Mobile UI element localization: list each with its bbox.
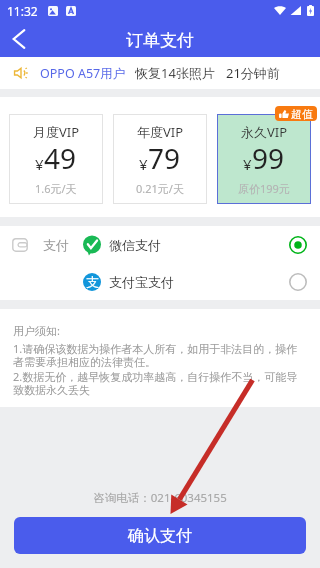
staticText: 订单支付	[126, 30, 194, 51]
staticText: ¥	[35, 154, 44, 174]
staticText: 79	[148, 139, 181, 177]
staticText: 11:32	[7, 3, 38, 19]
staticText: 21分钟前	[226, 64, 280, 82]
button[interactable]: 月度VIP	[9, 114, 103, 204]
staticText: 年度VIP	[137, 123, 184, 141]
staticText: 永久VIP	[241, 123, 288, 141]
staticText: 恢复14张照片	[135, 64, 215, 82]
staticText: 99	[252, 139, 285, 177]
staticText: 微信支付	[109, 237, 161, 253]
staticText: 1.6元/天	[35, 181, 77, 196]
staticText: 咨询电话：021-60345155	[0, 490, 320, 506]
staticText: ¥	[139, 154, 148, 174]
button[interactable]: 支付	[12, 226, 307, 263]
button[interactable]: 年度VIP	[113, 114, 207, 204]
staticText: 49	[44, 139, 77, 177]
staticText: 支付宝支付	[109, 274, 174, 290]
button[interactable]: Back	[5, 25, 33, 53]
staticText: 确认支付	[128, 526, 192, 546]
button[interactable]: 支	[12, 263, 307, 300]
button[interactable]: 永久VIP	[217, 114, 311, 204]
staticText: 超值	[291, 107, 313, 121]
staticText: 支	[86, 274, 99, 290]
staticText: 2.数据无价，越早恢复成功率越高，自行操作不当，可能导致数据永久丢失	[13, 369, 300, 397]
staticText: 用户须知:	[13, 323, 60, 338]
button[interactable]: 确认支付	[14, 517, 306, 554]
staticText: 1.请确保该数据为操作者本人所有，如用于非法目的，操作者需要承担相应的法律责任。	[13, 341, 300, 369]
staticText: OPPO A57用户	[40, 65, 126, 82]
staticText: 0.21元/天	[136, 181, 184, 196]
staticText: 月度VIP	[33, 123, 80, 141]
staticText: 原价199元	[238, 181, 290, 196]
staticText: 支付	[43, 237, 69, 253]
staticText: ¥	[243, 154, 252, 174]
